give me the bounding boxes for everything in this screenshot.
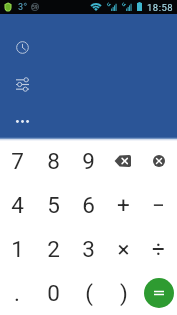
button[interactable]: . <box>0 270 35 315</box>
staticText: 18:58 <box>147 2 174 13</box>
staticText: 3 <box>82 236 95 262</box>
staticText: 3 <box>18 2 24 13</box>
button[interactable]: 8 <box>35 137 71 181</box>
button[interactable]: History <box>16 41 29 54</box>
button[interactable]: 9 <box>71 137 106 181</box>
staticText: × <box>117 236 130 262</box>
staticText: 59 <box>32 4 38 10</box>
button[interactable]: 1 <box>0 225 35 270</box>
button[interactable]: ) <box>106 270 141 315</box>
button[interactable]: + <box>106 181 141 225</box>
staticText: 8 <box>47 148 60 174</box>
staticText: 9 <box>82 148 95 174</box>
button[interactable]: Clear <box>141 137 176 181</box>
staticText: 4 <box>11 192 24 218</box>
button[interactable]: 3 <box>71 225 106 270</box>
button[interactable]: − <box>141 181 176 225</box>
button[interactable]: Converter <box>16 78 29 91</box>
other: Backspace <box>114 155 131 167</box>
staticText: 7 <box>11 148 24 174</box>
staticText: 0 <box>47 280 60 306</box>
button[interactable]: ( <box>71 270 106 315</box>
button[interactable]: 2 <box>35 225 71 270</box>
staticText: ÷ <box>152 236 165 262</box>
staticText: ) <box>120 280 128 306</box>
button[interactable]: 4 <box>0 181 35 225</box>
button[interactable]: More options <box>16 115 29 128</box>
button[interactable]: 5 <box>35 181 71 225</box>
button[interactable]: × <box>106 225 141 270</box>
staticText: − <box>152 192 165 218</box>
staticText: 5 <box>47 192 60 218</box>
staticText: 1 <box>11 236 24 262</box>
button[interactable]: 7 <box>0 137 35 181</box>
button[interactable]: ÷ <box>141 225 176 270</box>
button[interactable] <box>141 270 176 315</box>
staticText: 2 <box>47 236 60 262</box>
staticText: ( <box>85 280 93 306</box>
other: Clear <box>153 155 165 167</box>
staticText: + <box>117 192 130 218</box>
button[interactable]: 0 <box>35 270 71 315</box>
button[interactable]: 6 <box>71 181 106 225</box>
button[interactable]: Backspace <box>106 137 141 181</box>
staticText: . <box>14 280 20 306</box>
staticText: 6 <box>82 192 95 218</box>
